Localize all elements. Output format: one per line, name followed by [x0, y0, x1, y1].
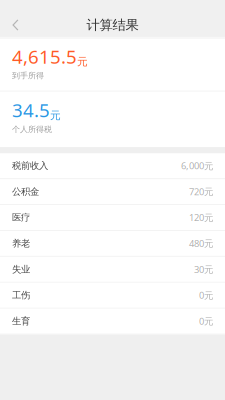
staticText: 失业: [12, 264, 30, 275]
staticText: 30元: [194, 263, 213, 275]
staticText: 6,000元: [181, 159, 213, 172]
staticText: 公积金: [12, 186, 39, 197]
staticText: 720元: [189, 185, 213, 198]
button[interactable]: 养老: [0, 231, 225, 257]
staticText: 工伤: [12, 289, 30, 301]
button[interactable]: 公积金: [0, 179, 225, 205]
button[interactable]: 医疗: [0, 205, 225, 231]
button[interactable]: 失业: [0, 257, 225, 283]
staticText: 生育: [12, 315, 30, 327]
button[interactable]: 税前收入: [0, 153, 225, 179]
staticText: 个人所得税: [12, 124, 52, 134]
staticText: 元: [50, 109, 61, 122]
button[interactable]: Back: [0, 14, 31, 36]
staticText: 计算结果: [86, 17, 138, 33]
staticText: 医疗: [12, 212, 30, 223]
staticText: 120元: [189, 211, 213, 224]
staticText: 元: [77, 55, 88, 68]
button[interactable]: 生育: [0, 309, 225, 334]
staticText: 34.5: [12, 98, 50, 122]
staticText: 480元: [189, 237, 213, 250]
staticText: 4,615.5: [12, 44, 77, 69]
staticText: 0元: [199, 315, 213, 327]
staticText: 养老: [12, 238, 30, 249]
staticText: 税前收入: [12, 160, 48, 171]
staticText: 0元: [199, 289, 213, 301]
button[interactable]: 工伤: [0, 283, 225, 309]
staticText: 到手所得: [12, 71, 44, 81]
